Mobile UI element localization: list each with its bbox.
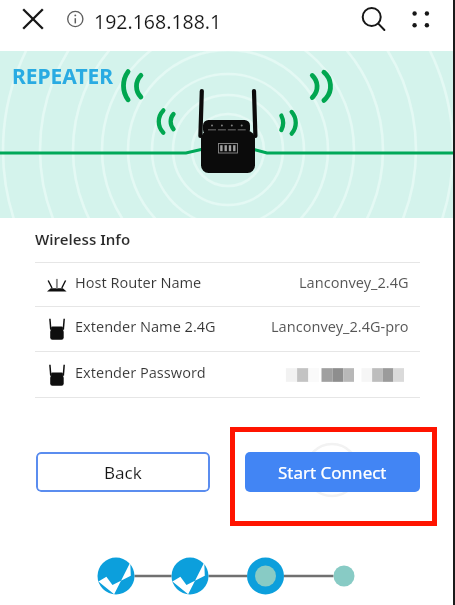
button[interactable]: Extender Password — [0, 352, 455, 397]
staticText: Host Router Name — [75, 272, 202, 292]
button[interactable]: More options — [399, 0, 443, 44]
staticText: Lanconvey_2.4G-pro — [271, 316, 409, 336]
staticText: Extender Name 2.4G — [75, 316, 216, 336]
staticText: Extender Password — [75, 362, 206, 382]
button[interactable]: Search — [350, 0, 394, 44]
button[interactable]: Back — [36, 452, 210, 492]
staticText: Start Connect — [278, 461, 387, 484]
button[interactable]: Extender Name 2.4G — [0, 307, 455, 351]
staticText: Back — [104, 461, 142, 484]
staticText: REPEATER — [12, 62, 114, 91]
button[interactable]: Start Connect — [245, 452, 420, 492]
staticText: Lanconvey_2.4G — [299, 272, 409, 292]
button[interactable]: Close — [11, 0, 55, 44]
staticText: 192.168.188.1 — [94, 8, 222, 35]
button[interactable]: Host Router Name — [0, 263, 455, 306]
staticText: Wireless Info — [35, 229, 131, 249]
